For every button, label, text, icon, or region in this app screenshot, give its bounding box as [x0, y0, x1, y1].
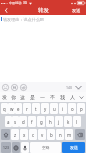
button[interactable]: j [55, 116, 63, 127]
button[interactable]: 这 [18, 92, 27, 102]
staticText: l [76, 119, 78, 125]
button[interactable]: 不 [47, 92, 57, 102]
button[interactable]: Topic [11, 84, 18, 91]
button[interactable]: w [8, 103, 15, 114]
staticText: w [10, 106, 14, 112]
button[interactable]: 你 [9, 92, 18, 102]
staticText: 不 [50, 94, 55, 100]
button[interactable]: z [11, 129, 19, 140]
button[interactable]: b [47, 129, 55, 140]
staticText: 我 [60, 94, 65, 100]
staticText: y [44, 106, 47, 112]
staticText: t [35, 106, 37, 112]
button[interactable]: e [15, 103, 22, 114]
staticText: 发送 [72, 8, 81, 13]
staticText: h [49, 119, 52, 125]
staticText: r [26, 106, 28, 112]
button[interactable]: v [38, 129, 46, 140]
staticText: 中国移动 [9, 1, 22, 5]
button[interactable]: o [68, 103, 76, 114]
staticText: c [32, 132, 35, 138]
staticText: j [58, 119, 60, 125]
staticText: b [50, 132, 53, 138]
button[interactable]: 人 [67, 92, 77, 102]
staticText: z [14, 132, 17, 138]
staticText: i [62, 106, 64, 112]
staticText: 空格 [42, 145, 50, 150]
staticText: 人 [70, 94, 75, 100]
staticText: 是 [30, 94, 35, 100]
staticText: 140 [66, 85, 73, 90]
staticText: 转发 [38, 7, 49, 14]
button[interactable]: f [28, 116, 36, 127]
button[interactable]: p [77, 103, 85, 114]
button[interactable]: 我 [57, 92, 67, 102]
staticText: v [41, 132, 44, 138]
staticText: 123 [3, 145, 9, 150]
staticText: k [67, 119, 70, 125]
staticText: 一 [40, 94, 45, 100]
button[interactable]: r [23, 103, 31, 114]
button[interactable]: a [5, 116, 12, 127]
button[interactable]: More candidates [77, 92, 86, 102]
staticText: x [23, 132, 26, 138]
staticText: 你 [11, 94, 16, 100]
button[interactable]: d [19, 116, 27, 127]
button[interactable]: 是 [27, 92, 37, 102]
button[interactable]: q [1, 103, 8, 114]
button[interactable]: l [73, 116, 81, 127]
button[interactable]: Emoji [2, 84, 9, 91]
button[interactable]: h [46, 116, 54, 127]
staticText: a [7, 119, 10, 125]
button[interactable]: 发送 [62, 142, 85, 153]
button[interactable]: g [37, 116, 45, 127]
button[interactable]: 一 [37, 92, 47, 102]
staticText: f [31, 119, 33, 125]
button[interactable]: x [20, 129, 28, 140]
staticText: s [14, 119, 17, 125]
staticText: e [17, 106, 20, 112]
button[interactable]: shift [1, 129, 10, 140]
staticText: q [3, 106, 6, 112]
button[interactable]: Mention [20, 84, 27, 91]
button[interactable]: k [64, 116, 72, 127]
button[interactable]: s [12, 116, 19, 127]
button[interactable]: m [65, 129, 73, 140]
staticText: m [67, 132, 72, 138]
staticText: 发送 [70, 145, 78, 150]
staticText: p [80, 106, 83, 112]
button[interactable]: globe [12, 142, 20, 153]
staticText: o [71, 106, 74, 112]
button[interactable]: t [32, 103, 40, 114]
button[interactable]: i [59, 103, 67, 114]
staticText: d [22, 119, 25, 125]
staticText: n [59, 132, 62, 138]
staticText: 这 [20, 94, 25, 100]
button[interactable]: n [56, 129, 64, 140]
button[interactable]: 发 [0, 92, 9, 102]
staticText: u [53, 106, 56, 112]
staticText: 转发理由：说点什么吧 [3, 17, 44, 22]
button[interactable]: back [75, 129, 85, 140]
button[interactable]: y [41, 103, 49, 114]
button[interactable]: 空格 [30, 142, 61, 153]
button[interactable]: 123 [1, 142, 11, 153]
staticText: 3G [23, 1, 28, 5]
button[interactable]: 发送 [69, 6, 86, 15]
staticText: 发 [2, 94, 7, 100]
button[interactable]: u [50, 103, 58, 114]
button[interactable]: c [29, 129, 37, 140]
button[interactable]: mic [21, 142, 29, 153]
button[interactable]: Back [0, 6, 13, 15]
staticText: g [40, 119, 43, 125]
button[interactable]: Hide keyboard [75, 84, 82, 91]
